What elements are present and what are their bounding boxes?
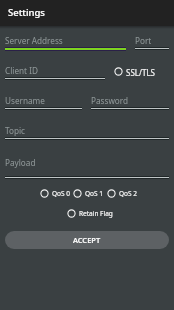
staticText: Password <box>91 95 129 106</box>
staticText: Username <box>5 95 45 106</box>
staticText: Payload <box>5 157 36 168</box>
button[interactable]: Settings <box>0 0 174 26</box>
staticText: Server Address <box>5 35 63 46</box>
button[interactable]: Topic <box>5 125 169 136</box>
staticText: Topic <box>5 125 26 136</box>
button[interactable]: QoS 2 <box>107 188 137 199</box>
button[interactable]: SSL/TLS <box>114 65 155 78</box>
staticText: QoS 1 <box>85 189 103 198</box>
staticText: ACCEPT <box>73 235 101 245</box>
staticText: Settings <box>8 6 45 19</box>
staticText: Port <box>135 35 152 46</box>
button[interactable]: QoS 0 <box>40 188 70 199</box>
button[interactable]: Server Address <box>5 35 126 46</box>
button[interactable]: Payload <box>5 157 169 168</box>
button[interactable]: Port <box>135 35 169 46</box>
button[interactable]: Password <box>91 95 169 106</box>
button[interactable]: ACCEPT <box>5 231 169 249</box>
staticText: Client ID <box>5 65 38 76</box>
staticText: QoS 0 <box>52 189 70 198</box>
button[interactable]: Username <box>5 95 82 106</box>
button[interactable]: Retain Flag <box>67 208 113 219</box>
button[interactable]: QoS 1 <box>73 188 103 199</box>
staticText: QoS 2 <box>119 189 137 198</box>
staticText: Retain Flag <box>79 209 113 218</box>
staticText: SSL/TLS <box>126 67 155 78</box>
button[interactable]: Client ID <box>5 65 105 76</box>
